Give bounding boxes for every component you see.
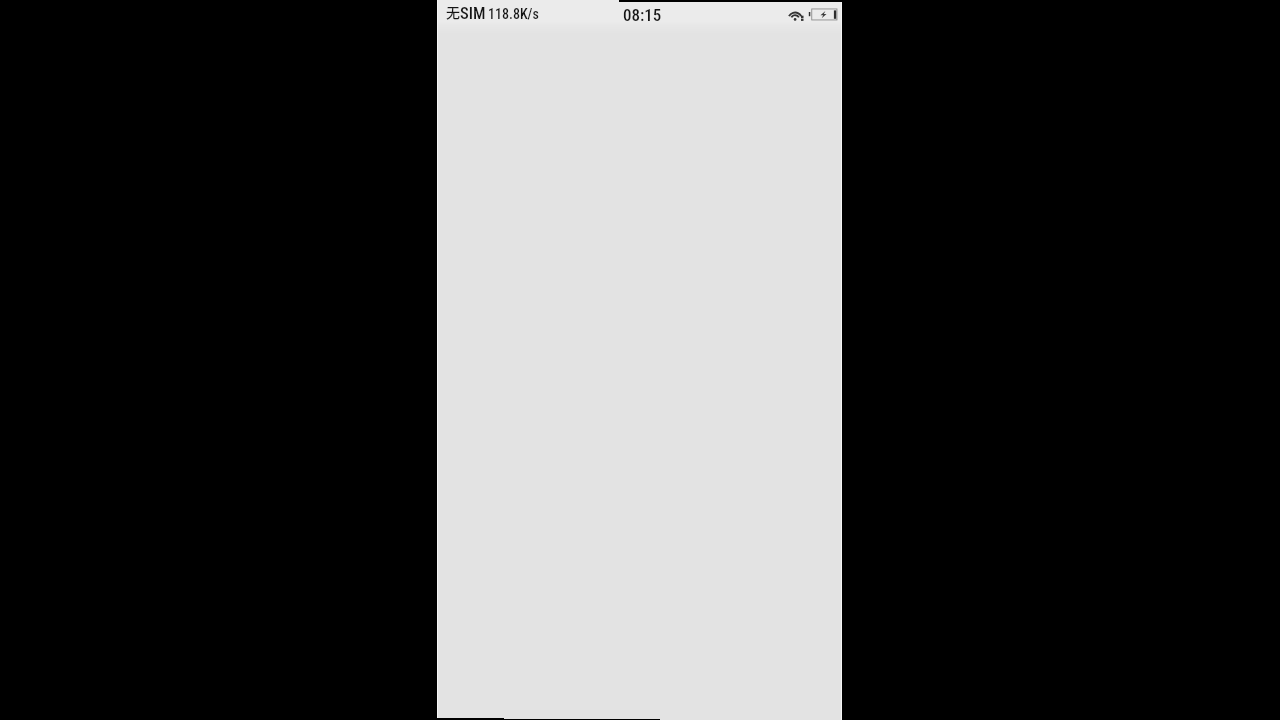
staticText: SIM — [460, 4, 486, 23]
button[interactable]: Wi-Fi connected, no internet — [788, 10, 804, 21]
staticText: 118.8K/s — [488, 6, 539, 22]
button[interactable]: Battery charging — [808, 8, 838, 21]
staticText: 无 — [446, 2, 460, 22]
staticText: 08:15 — [623, 5, 662, 25]
